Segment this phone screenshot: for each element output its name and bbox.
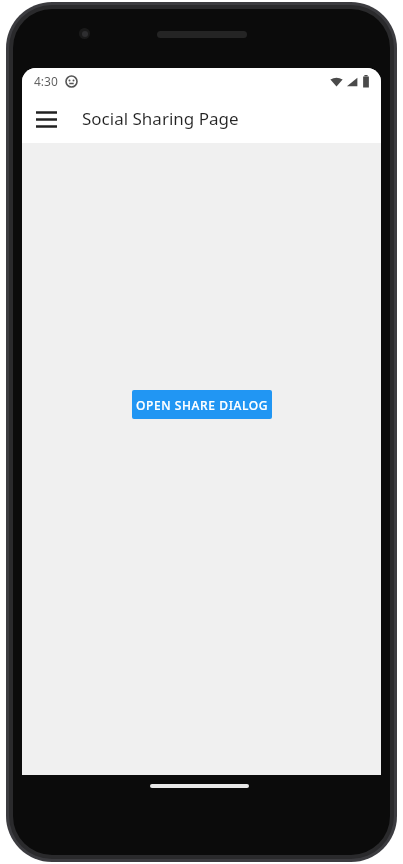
button[interactable]: Open navigation menu — [26, 99, 66, 139]
staticText: 4:30 — [34, 73, 58, 89]
staticText: OPEN SHARE DIALOG — [136, 397, 269, 413]
staticText: Social Sharing Page — [82, 107, 239, 130]
button[interactable]: OPEN SHARE DIALOG — [132, 390, 272, 419]
